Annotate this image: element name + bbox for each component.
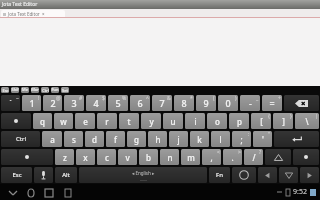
button[interactable]: Backspace bbox=[284, 95, 319, 111]
staticText: , bbox=[210, 152, 213, 163]
staticText: o bbox=[215, 116, 220, 127]
button[interactable]: y bbox=[141, 113, 161, 129]
button[interactable]: \ bbox=[295, 113, 319, 129]
staticText: ! bbox=[38, 95, 40, 102]
staticText: : bbox=[248, 131, 250, 138]
button[interactable]: Shift bbox=[1, 149, 53, 165]
button[interactable]: Ctrl bbox=[41, 87, 49, 93]
button[interactable]: Voice input bbox=[34, 167, 53, 183]
staticText: l bbox=[219, 134, 222, 145]
button[interactable]: Alt bbox=[55, 167, 77, 183]
button[interactable]: f bbox=[106, 131, 125, 147]
staticText: . bbox=[231, 152, 234, 163]
staticText: Ctrl bbox=[42, 88, 49, 93]
button[interactable]: u bbox=[163, 113, 183, 129]
staticText: # bbox=[79, 95, 83, 102]
staticText: - bbox=[249, 97, 252, 109]
button[interactable]: d bbox=[85, 131, 104, 147]
button[interactable]: 4 bbox=[86, 95, 106, 111]
button[interactable]: Left bbox=[258, 167, 277, 183]
button[interactable]: ` bbox=[1, 95, 20, 111]
staticText: Mark bbox=[31, 87, 39, 93]
button[interactable]: Up bbox=[265, 149, 291, 165]
button[interactable]: Esc bbox=[1, 87, 9, 93]
button[interactable]: / bbox=[244, 149, 263, 165]
staticText: Fn bbox=[216, 171, 223, 179]
button[interactable]: 8 bbox=[174, 95, 194, 111]
button[interactable]: k bbox=[190, 131, 209, 147]
button[interactable]: 2 bbox=[43, 95, 62, 111]
button[interactable]: 9 bbox=[196, 95, 216, 111]
button[interactable]: a bbox=[42, 131, 62, 147]
button[interactable]: n bbox=[160, 149, 179, 165]
button[interactable]: Mark bbox=[31, 87, 39, 93]
button[interactable]: Right bbox=[300, 167, 319, 183]
button[interactable]: Jota Text Editor × bbox=[1, 10, 65, 18]
button[interactable]: m bbox=[181, 149, 200, 165]
button[interactable]: Ctrl bbox=[1, 131, 40, 147]
button[interactable]: b bbox=[139, 149, 158, 165]
button[interactable]: Down bbox=[279, 167, 298, 183]
button[interactable]: ; bbox=[232, 131, 251, 147]
staticText: Esc bbox=[2, 88, 9, 93]
button[interactable]: q bbox=[33, 113, 52, 129]
button[interactable]: ' bbox=[253, 131, 272, 147]
button[interactable]: s bbox=[64, 131, 83, 147]
button[interactable]: Fn bbox=[209, 167, 230, 183]
button[interactable]: j bbox=[169, 131, 188, 147]
staticText: ? bbox=[259, 149, 262, 156]
button[interactable]: i bbox=[185, 113, 205, 129]
button[interactable]: Menu bbox=[21, 87, 29, 93]
button[interactable]: 1 bbox=[22, 95, 41, 111]
button[interactable]: Func bbox=[51, 87, 59, 93]
staticText: _ bbox=[256, 95, 259, 102]
button[interactable]: ] bbox=[273, 113, 293, 129]
button[interactable]: 7 bbox=[152, 95, 172, 111]
button[interactable]: Shift bbox=[11, 87, 19, 93]
button[interactable]: Space bbox=[79, 167, 207, 183]
button[interactable]: Emoji bbox=[232, 167, 256, 183]
staticText: + bbox=[278, 95, 281, 102]
button[interactable]: l bbox=[211, 131, 230, 147]
staticText: < bbox=[217, 149, 220, 156]
button[interactable]: z bbox=[55, 149, 74, 165]
button[interactable]: v bbox=[118, 149, 137, 165]
button[interactable]: - bbox=[240, 95, 260, 111]
staticText: \ bbox=[305, 116, 309, 127]
staticText: r bbox=[105, 116, 109, 127]
staticText: d bbox=[92, 134, 97, 145]
button[interactable]: 3 bbox=[64, 95, 84, 111]
button[interactable]: c bbox=[97, 149, 116, 165]
button[interactable]: t bbox=[119, 113, 139, 129]
button[interactable]: h bbox=[148, 131, 167, 147]
button[interactable]: Esc bbox=[1, 167, 32, 183]
staticText: w bbox=[60, 116, 67, 127]
button[interactable]: , bbox=[202, 149, 221, 165]
button[interactable]: Hide keyboard bbox=[5, 185, 20, 200]
staticText: | bbox=[315, 113, 318, 120]
button[interactable]: e bbox=[75, 113, 95, 129]
button[interactable]: Tab bbox=[1, 113, 31, 129]
button[interactable]: [ bbox=[251, 113, 271, 129]
button[interactable]: 6 bbox=[130, 95, 150, 111]
button[interactable]: Set bbox=[61, 87, 69, 93]
staticText: e bbox=[83, 116, 88, 127]
button[interactable]: w bbox=[54, 113, 73, 129]
button[interactable]: Menu bbox=[60, 185, 75, 200]
button[interactable]: p bbox=[229, 113, 249, 129]
button[interactable]: g bbox=[127, 131, 146, 147]
staticText: $ bbox=[102, 95, 105, 102]
button[interactable]: Home bbox=[23, 185, 38, 200]
button[interactable]: = bbox=[262, 95, 282, 111]
staticText: y bbox=[149, 116, 154, 127]
button[interactable]: x bbox=[76, 149, 95, 165]
button[interactable]: 5 bbox=[108, 95, 128, 111]
button[interactable]: 0 bbox=[218, 95, 238, 111]
button[interactable]: Enter bbox=[274, 131, 319, 147]
button[interactable]: o bbox=[207, 113, 227, 129]
button[interactable]: r bbox=[97, 113, 117, 129]
staticText: Menu bbox=[21, 87, 29, 93]
button[interactable]: Recents bbox=[41, 185, 56, 200]
button[interactable]: . bbox=[223, 149, 242, 165]
button[interactable]: Shift right bbox=[293, 149, 319, 165]
